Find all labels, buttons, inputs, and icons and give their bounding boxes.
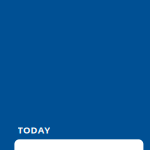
staticText: TODAY	[18, 124, 50, 136]
button[interactable]: Today's first entry	[14, 139, 143, 150]
